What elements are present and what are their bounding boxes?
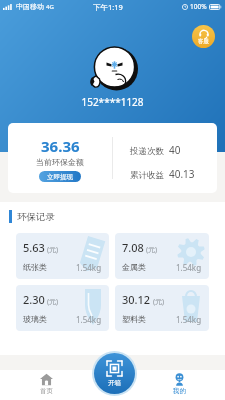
staticText: 客服	[198, 38, 209, 45]
staticText: (元)	[146, 245, 158, 255]
staticText: 纸张类	[23, 262, 47, 272]
button[interactable]: 开箱 Scan to open	[92, 351, 137, 396]
staticText: 中国移动	[16, 2, 44, 11]
staticText: 40	[169, 143, 181, 157]
button[interactable]: 客服 Customer service	[192, 25, 215, 48]
button[interactable]: 立即提现	[39, 171, 81, 182]
staticText: 152****1128	[0, 95, 225, 109]
staticText: 1.54kg	[176, 262, 202, 273]
staticText: 玻璃类	[23, 314, 47, 324]
staticText: 2.30	[23, 292, 45, 307]
staticText: 首页	[40, 387, 53, 395]
staticText: 1.54kg	[76, 262, 102, 273]
staticText: 塑料类	[122, 314, 146, 324]
staticText: 我的	[173, 387, 186, 395]
staticText: 当前环保金额	[36, 157, 84, 167]
button[interactable]: 首页	[26, 373, 67, 395]
staticText: 立即提现	[47, 173, 73, 181]
staticText: 投递次数	[130, 146, 164, 157]
button[interactable]: 5.63	[16, 233, 109, 279]
staticText: 1.54kg	[76, 314, 102, 325]
button[interactable]: 2.30	[16, 285, 109, 331]
staticText: 累计收益	[130, 170, 164, 181]
staticText: 1.54kg	[176, 314, 202, 325]
button[interactable]: 30.12	[115, 285, 209, 331]
staticText: 5.63	[23, 240, 45, 255]
staticText: 环保记录	[17, 211, 55, 223]
staticText: (元)	[47, 297, 59, 307]
staticText: 下午1:19	[93, 2, 123, 12]
staticText: (元)	[47, 245, 59, 255]
staticText: 100%	[190, 2, 207, 11]
staticText: 金属类	[122, 262, 146, 272]
staticText: 30.12	[122, 292, 151, 307]
staticText: (元)	[153, 297, 165, 307]
staticText: 40.13	[169, 167, 195, 181]
staticText: 36.36	[41, 136, 80, 156]
button[interactable]: 我的	[159, 373, 200, 395]
button[interactable]: 7.08	[115, 233, 209, 279]
staticText: 7.08	[122, 240, 144, 255]
staticText: 4G	[46, 3, 54, 11]
staticText: 开箱	[108, 379, 121, 387]
